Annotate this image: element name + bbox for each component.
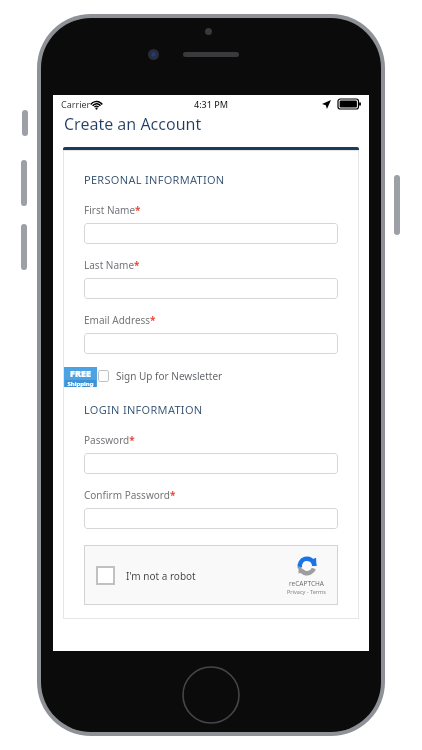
- staticText: FREE: [70, 367, 91, 379]
- button[interactable]: [84, 223, 338, 244]
- staticText: Last Name*: [84, 258, 140, 272]
- staticText: Create an Account: [64, 113, 202, 135]
- button[interactable]: [84, 333, 338, 354]
- staticText: Sign Up for Newsletter: [116, 369, 223, 383]
- staticText: Password*: [84, 433, 135, 447]
- button[interactable]: [84, 508, 338, 529]
- button[interactable]: I'm not a robot: [84, 545, 338, 605]
- button[interactable]: Sign Up for Newsletter: [98, 369, 227, 383]
- staticText: Email Address*: [84, 313, 156, 327]
- staticText: Shipping: [67, 380, 94, 387]
- staticText: 4:31 PM: [194, 98, 228, 110]
- staticText: First Name*: [84, 203, 141, 217]
- staticText: PERSONAL INFORMATION: [84, 172, 225, 187]
- staticText: Carrier: [61, 98, 91, 110]
- other: Home: [182, 666, 240, 724]
- button[interactable]: [84, 278, 338, 299]
- staticText: Confirm Password*: [84, 488, 176, 502]
- staticText: Privacy - Terms: [287, 588, 326, 595]
- staticText: LOGIN INFORMATION: [84, 402, 203, 417]
- button[interactable]: [84, 453, 338, 474]
- staticText: reCAPTCHA: [289, 579, 324, 588]
- button[interactable]: Free Shipping: [64, 367, 97, 387]
- staticText: I'm not a robot: [126, 569, 196, 583]
